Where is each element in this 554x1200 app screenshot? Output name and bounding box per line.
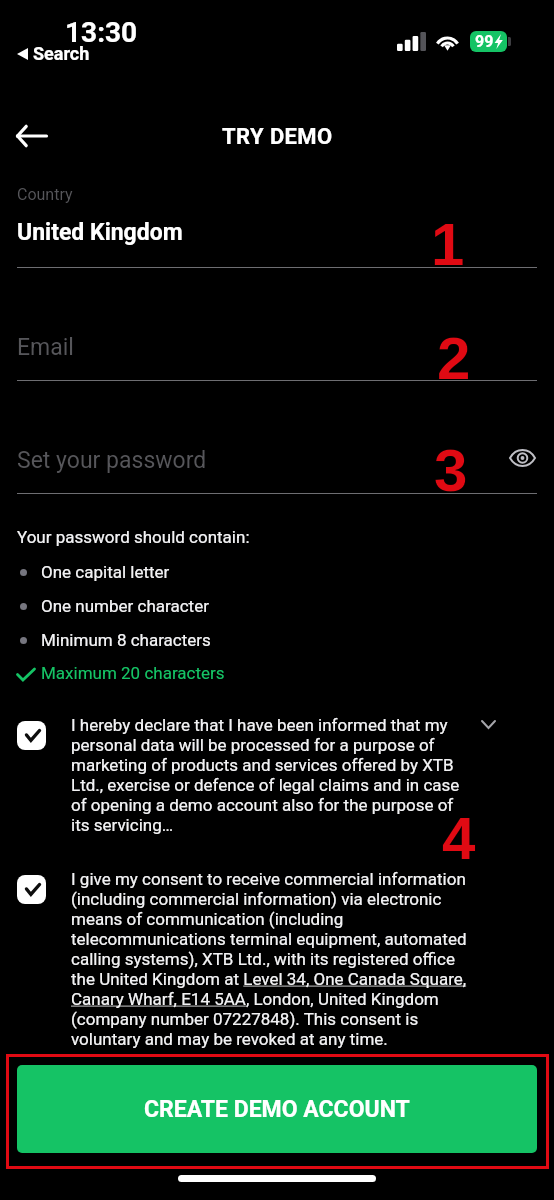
staticText: Minimum 8 characters [41,630,211,650]
staticText: 2 [437,325,471,392]
staticText: Search [33,43,90,64]
staticText: 1 [431,211,465,278]
staticText: United Kingdom [17,219,183,246]
staticText: TRY DEMO [222,124,333,150]
staticText: One capital letter [41,562,170,582]
button[interactable]: Show password [504,440,540,476]
staticText: Country [17,185,73,204]
staticText: One number character [41,596,209,616]
button[interactable]: Back [6,115,56,157]
staticText: I hereby declare that I have been inform… [71,715,471,835]
staticText: Set your password [17,447,207,474]
button[interactable]: Consent checkbox [17,721,46,750]
staticText: Your password should contain: [17,527,250,547]
staticText: Maximum 20 characters [41,663,225,683]
staticText: CREATE DEMO ACCOUNT [144,1096,410,1123]
button[interactable]: Consent checkbox [17,875,46,904]
button[interactable]: Expand [470,707,506,741]
button[interactable]: Back to Search [17,43,90,64]
staticText: 4 [442,805,476,872]
staticText: 13:30 [65,16,138,49]
staticText: Email [17,334,74,361]
staticText: 99 [475,32,494,51]
staticText: I give my consent to receive commercial … [71,869,471,1049]
button[interactable]: CREATE DEMO ACCOUNT [17,1065,537,1153]
staticText: 3 [434,437,468,504]
